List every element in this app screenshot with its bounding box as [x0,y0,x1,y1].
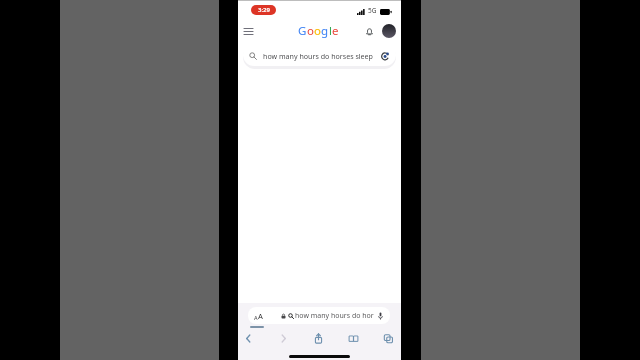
staticText: A [258,311,263,321]
staticText: g [321,23,329,39]
staticText: 5G [368,6,377,15]
staticText: how many hours do horses sleep [295,311,374,321]
button[interactable]: Account [382,24,396,38]
button[interactable]: Tabs [379,330,397,346]
staticText: G [298,23,307,39]
staticText: e [332,23,339,39]
button[interactable]: Google Lens [380,51,391,62]
staticText: o [307,23,314,39]
staticText: o [314,23,321,39]
other: Voice search [378,312,383,320]
button[interactable]: Bookmarks [344,330,362,346]
button[interactable]: Notifications [363,25,376,38]
button[interactable]: Back [239,330,257,346]
button[interactable]: Share [309,330,327,346]
staticText: l [329,23,332,39]
button[interactable]: Menu [239,22,257,40]
button[interactable]: Forward [274,330,292,346]
staticText: how many hours do horses sleep [263,51,373,61]
staticText: 3:29 [258,6,270,14]
staticText: A [254,314,258,321]
button[interactable]: how many hours do horses sleep [243,44,396,66]
button[interactable]: A [248,307,390,324]
